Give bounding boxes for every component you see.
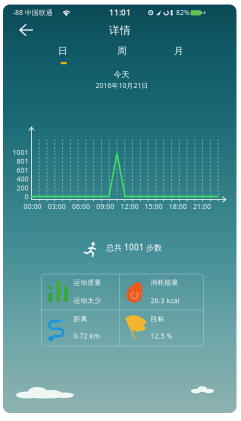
staticText: 周 xyxy=(117,45,126,57)
staticText: 0 xyxy=(24,192,28,201)
staticText: 12.5 % xyxy=(150,332,172,340)
staticText: 运动太少 xyxy=(73,296,101,305)
button[interactable]: Back xyxy=(14,20,38,40)
staticText: 15:00 xyxy=(145,202,163,211)
staticText: 月 xyxy=(174,45,183,57)
staticText: 今天 xyxy=(113,70,129,79)
staticText: 06:00 xyxy=(72,202,90,211)
staticText: 1001 xyxy=(12,148,28,157)
staticText: 801 xyxy=(16,157,28,166)
staticText: 200 xyxy=(16,183,28,192)
staticText: 601 xyxy=(16,166,28,175)
staticText: 0.72 km xyxy=(73,332,99,340)
staticText: 21:00 xyxy=(193,202,211,211)
staticText: 日 xyxy=(58,45,67,57)
staticText: 2016年10月21日 xyxy=(95,81,148,90)
button[interactable]: 日 xyxy=(42,43,82,59)
button[interactable]: 月 xyxy=(159,43,199,59)
staticText: 运动质量 xyxy=(73,278,101,287)
staticText: 00:00 xyxy=(24,202,42,211)
staticText: 400 xyxy=(16,175,28,183)
staticText: 总共 1001 步数 xyxy=(106,242,162,253)
staticText: 18:00 xyxy=(169,202,187,211)
staticText: 消耗能量 xyxy=(150,278,178,287)
staticText: 12:00 xyxy=(120,202,138,211)
staticText: 26.3 kcal xyxy=(150,296,179,305)
staticText: 目标 xyxy=(150,315,164,323)
staticText: 距离 xyxy=(73,315,87,323)
staticText: 82% xyxy=(176,8,190,17)
staticText: 09:00 xyxy=(96,202,114,211)
staticText: 详情 xyxy=(109,24,131,37)
button[interactable]: 周 xyxy=(102,43,142,59)
staticText: -88 中国联通 xyxy=(13,8,53,17)
staticText: 03:00 xyxy=(48,202,66,211)
staticText: 11:01 xyxy=(109,7,131,18)
